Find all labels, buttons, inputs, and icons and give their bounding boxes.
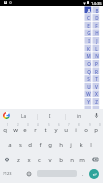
staticText: C <box>87 15 90 21</box>
staticText: p <box>94 126 98 134</box>
button[interactable]: . <box>78 167 87 180</box>
staticText: u <box>64 126 68 134</box>
button[interactable]: La <box>13 110 33 122</box>
staticText: B <box>95 8 99 14</box>
button[interactable]: Enter <box>89 169 99 179</box>
button[interactable]: Shift <box>2 153 12 166</box>
button[interactable]: in <box>69 110 89 122</box>
button[interactable]: Y <box>85 98 92 105</box>
button[interactable]: x <box>24 153 34 166</box>
button[interactable]: G <box>85 29 92 36</box>
button[interactable]: a <box>5 138 15 151</box>
staticText: s <box>19 141 22 149</box>
button[interactable]: g <box>45 138 55 151</box>
button[interactable]: Q <box>85 68 92 75</box>
button[interactable]: v <box>45 153 55 166</box>
staticText: Y <box>87 99 90 105</box>
staticText: O <box>87 61 91 67</box>
button[interactable]: E <box>85 22 92 29</box>
button[interactable]: L <box>93 45 100 52</box>
staticText: X <box>95 91 98 97</box>
button[interactable]: d <box>25 138 35 151</box>
button[interactable]: T <box>93 75 100 82</box>
button[interactable]: I <box>85 37 92 44</box>
button[interactable]: u <box>61 123 71 136</box>
button[interactable]: b <box>56 153 66 166</box>
staticText: E <box>87 23 90 29</box>
button[interactable]: X <box>93 90 100 97</box>
button[interactable]: I <box>40 110 60 122</box>
button[interactable]: o <box>81 123 91 136</box>
button[interactable]: l <box>86 138 96 151</box>
staticText: c <box>38 156 41 164</box>
staticText: 2 <box>17 123 19 127</box>
staticText: 7 <box>68 123 70 127</box>
staticText: f <box>39 141 42 149</box>
staticText: A <box>87 8 91 14</box>
button[interactable]: M <box>85 52 92 59</box>
button[interactable]: W <box>85 90 92 97</box>
button[interactable]: c <box>34 153 44 166</box>
staticText: V <box>95 84 98 90</box>
staticText: q <box>3 126 7 134</box>
button[interactable]: j <box>66 138 76 151</box>
button[interactable]: Emoji <box>24 167 34 180</box>
button[interactable]: n <box>67 153 77 166</box>
staticText: h <box>59 141 63 149</box>
button[interactable]: O <box>85 60 92 67</box>
button[interactable]: e <box>20 123 30 136</box>
button[interactable]: P <box>93 60 100 67</box>
staticText: La <box>21 113 26 119</box>
staticText: 1 <box>7 123 9 127</box>
staticText: m <box>79 156 85 164</box>
button[interactable]: z <box>13 153 23 166</box>
button[interactable]: J <box>93 37 100 44</box>
button[interactable]: Voice input <box>93 112 100 119</box>
button[interactable]: p <box>91 123 101 136</box>
staticText: g <box>48 141 52 149</box>
button[interactable]: y <box>51 123 61 136</box>
staticText: 5 <box>48 123 50 127</box>
staticText: J <box>96 38 98 44</box>
button[interactable]: C <box>85 14 92 21</box>
button[interactable]: D <box>93 14 100 21</box>
staticText: Q <box>87 69 91 75</box>
button[interactable]: R <box>93 68 100 75</box>
staticText: T <box>95 76 98 82</box>
button[interactable]: B <box>93 7 100 14</box>
staticText: w <box>13 126 18 134</box>
button[interactable]: w <box>10 123 20 136</box>
button[interactable]: m <box>77 153 87 166</box>
staticText: j <box>70 141 72 149</box>
button[interactable]: Google <box>3 112 10 119</box>
button[interactable]: Z <box>93 98 100 105</box>
button[interactable]: H <box>93 29 100 36</box>
button[interactable]: s <box>15 138 25 151</box>
button[interactable]: r <box>30 123 40 136</box>
button[interactable]: t <box>40 123 50 136</box>
staticText: N <box>95 53 99 59</box>
button[interactable]: f <box>35 138 45 151</box>
staticText: 6 <box>58 123 60 127</box>
button[interactable]: S <box>85 75 92 82</box>
button[interactable]: A <box>85 7 92 14</box>
staticText: 9 <box>89 123 91 127</box>
button[interactable]: V <box>93 83 100 90</box>
button[interactable]: ?123 <box>1 167 13 180</box>
button[interactable]: h <box>56 138 66 151</box>
staticText: I <box>49 113 51 119</box>
button[interactable]: k <box>76 138 86 151</box>
button[interactable]: N <box>93 52 100 59</box>
button[interactable]: i <box>71 123 81 136</box>
staticText: i <box>75 126 77 134</box>
staticText: 4 <box>37 123 39 127</box>
button[interactable]: F <box>93 22 100 29</box>
button[interactable]: Backspace <box>90 153 100 166</box>
staticText: d <box>28 141 32 149</box>
button[interactable]: K <box>85 45 92 52</box>
button[interactable]: q <box>0 123 10 136</box>
button[interactable]: U <box>85 83 92 90</box>
staticText: R <box>95 69 98 75</box>
staticText: e <box>23 126 27 134</box>
